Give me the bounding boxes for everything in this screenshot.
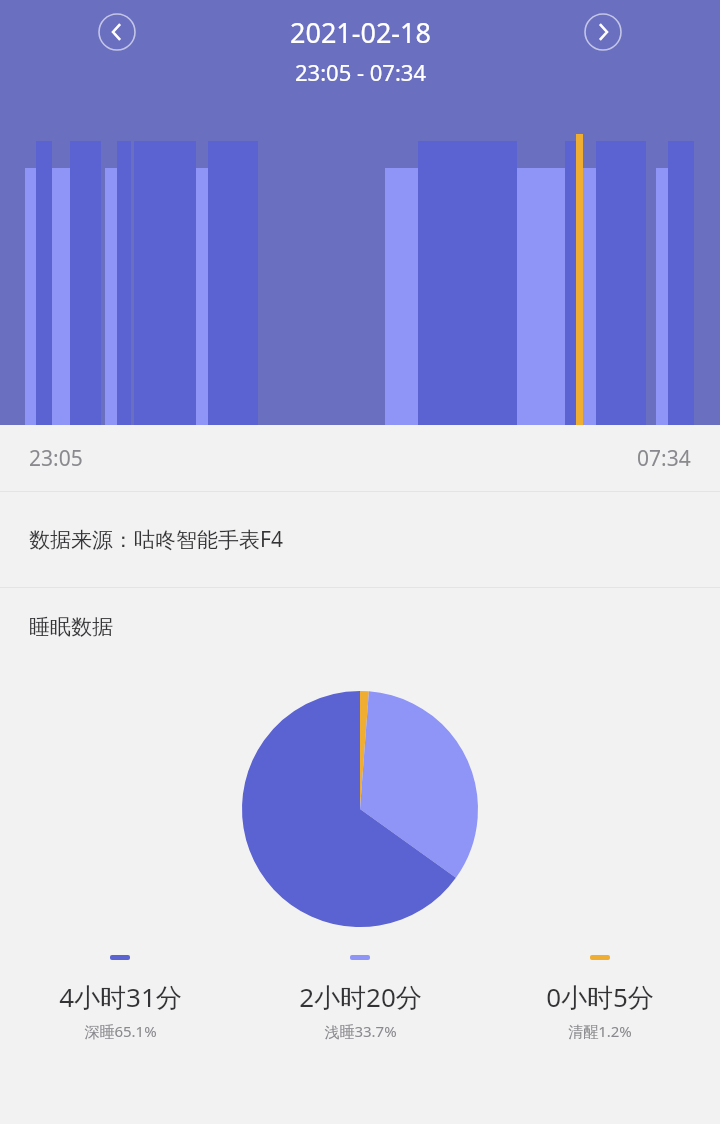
- button[interactable]: 2小时20分: [240, 955, 480, 1041]
- staticText: 23:05 - 07:34: [295, 57, 426, 87]
- staticText: 23:05: [29, 444, 83, 473]
- staticText: 4小时31分: [59, 979, 182, 1015]
- staticText: 睡眠数据: [29, 614, 113, 640]
- staticText: 深睡65.1%: [84, 1021, 157, 1041]
- staticText: 数据来源：咕咚智能手表F4: [29, 525, 283, 554]
- staticText: 2021-02-18: [290, 14, 431, 51]
- button[interactable]: 数据来源：咕咚智能手表F4: [0, 492, 720, 587]
- button[interactable]: Next day: [581, 10, 625, 54]
- button[interactable]: 4小时31分: [0, 955, 240, 1041]
- staticText: 浅睡33.7%: [324, 1021, 397, 1041]
- staticText: 2小时20分: [299, 979, 422, 1015]
- staticText: 0小时5分: [546, 979, 654, 1015]
- staticText: 清醒1.2%: [568, 1021, 632, 1041]
- button[interactable]: 0小时5分: [480, 955, 720, 1041]
- staticText: 07:34: [637, 444, 691, 473]
- button[interactable]: Previous day: [95, 10, 139, 54]
